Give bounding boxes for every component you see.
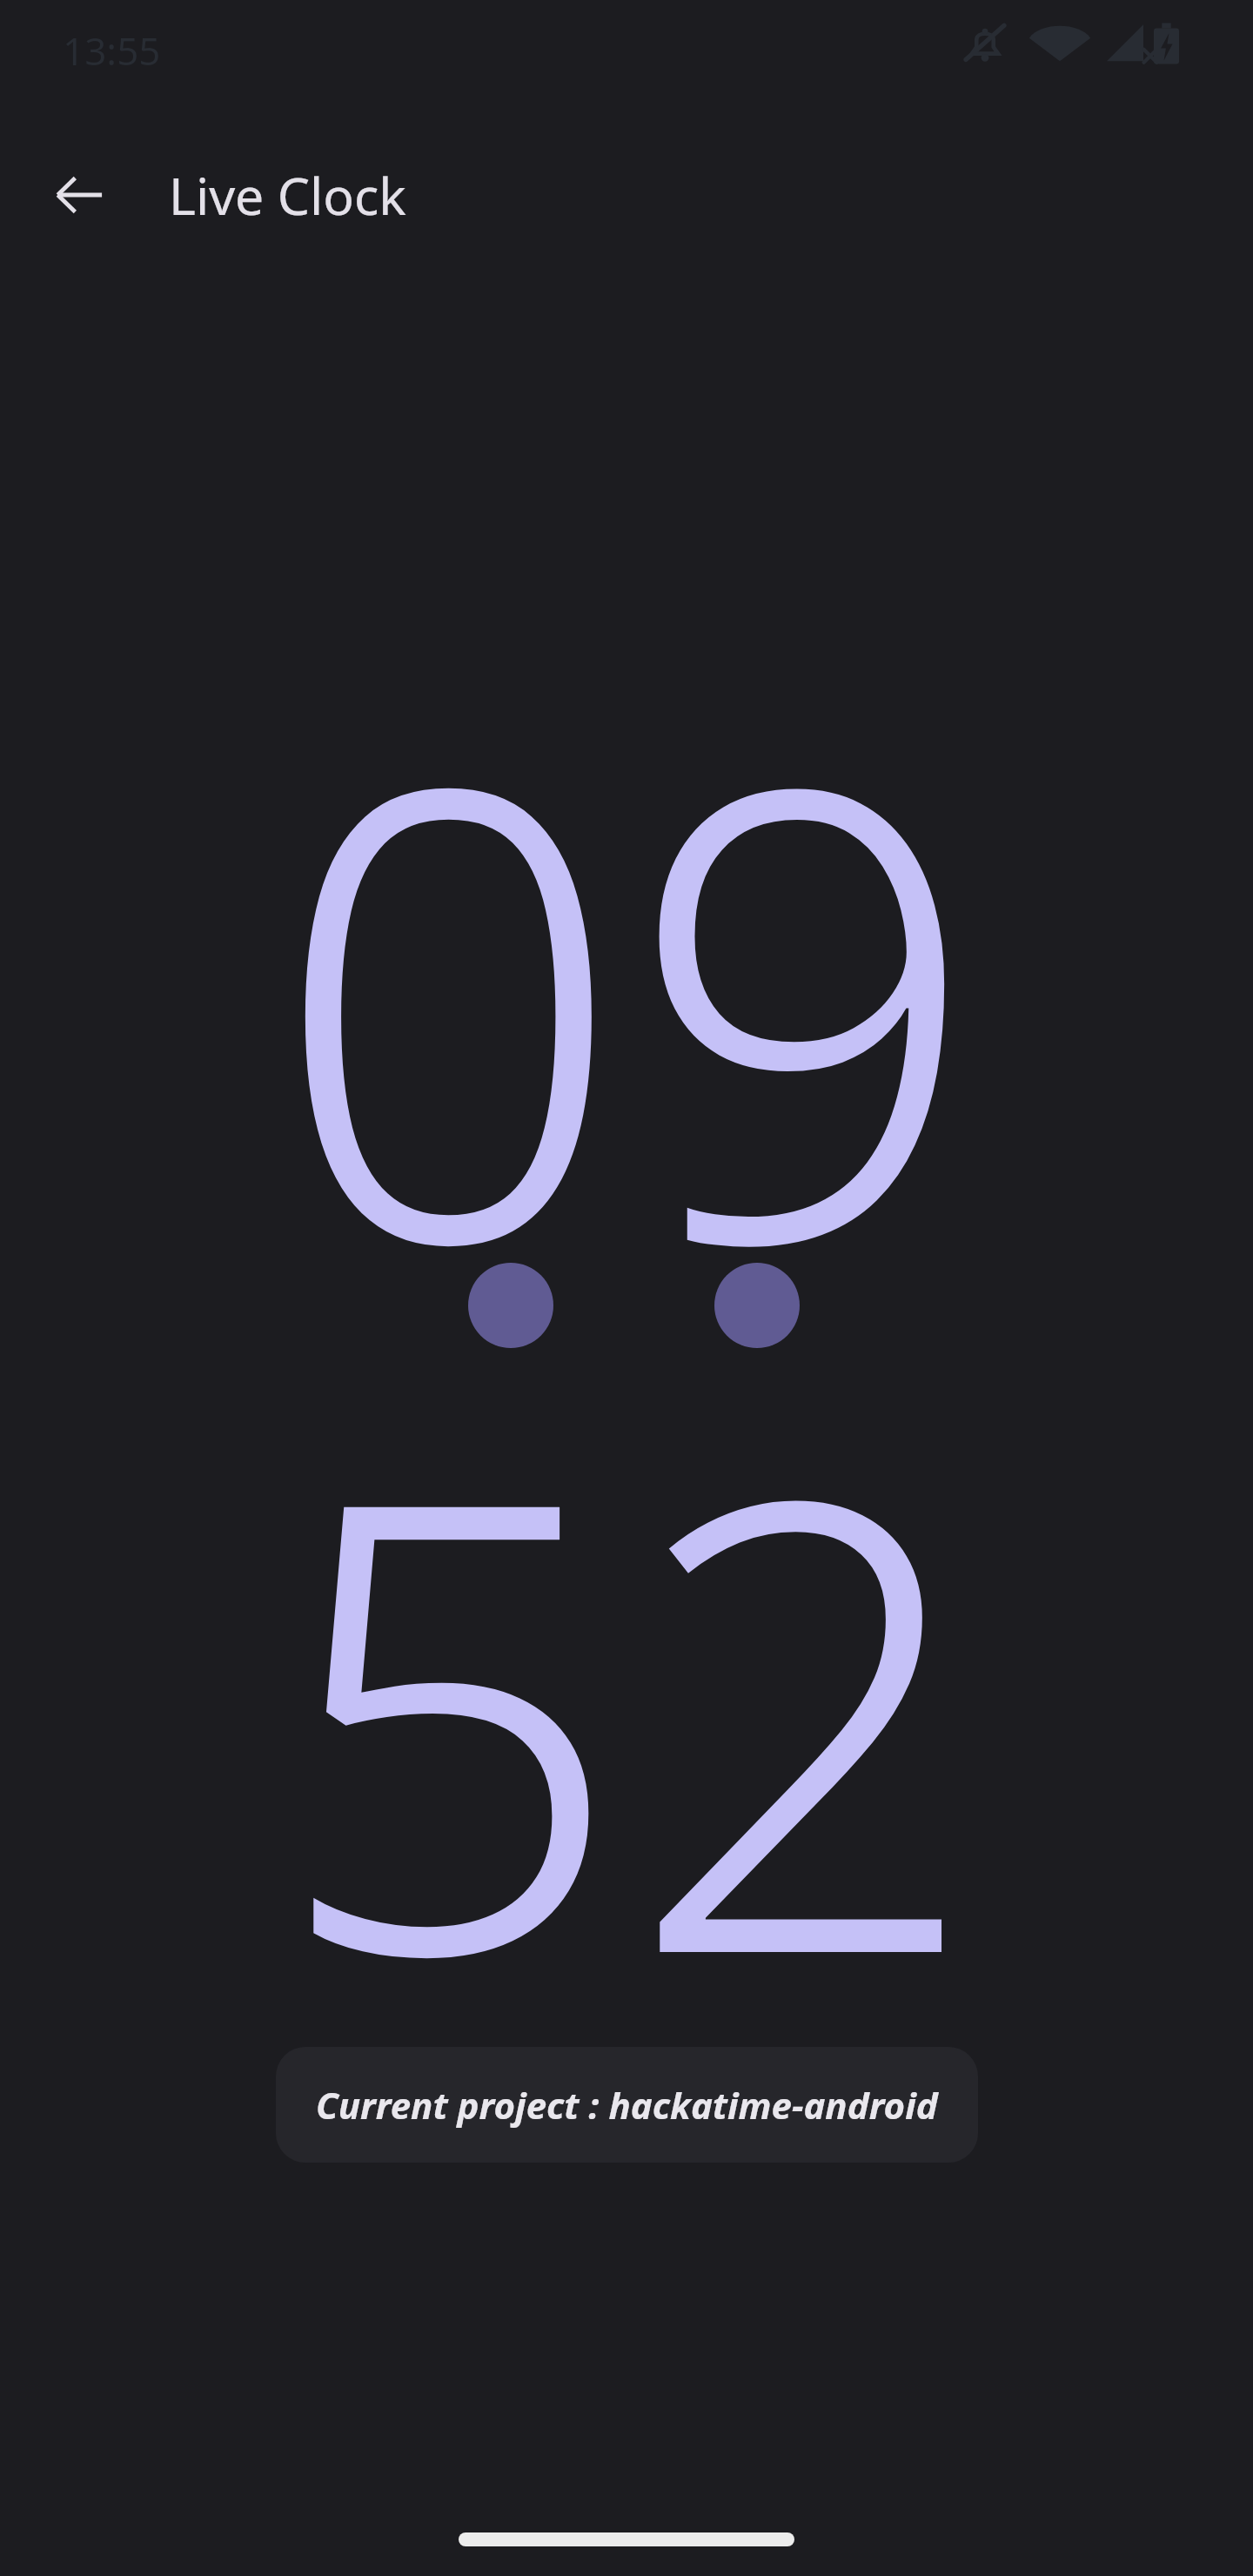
staticText: Live Clock — [169, 160, 406, 230]
staticText: 52 — [271, 1286, 982, 2135]
button[interactable]: Current project : hackatime-android — [276, 2047, 978, 2163]
button[interactable]: Back — [37, 152, 122, 238]
staticText: 09 — [271, 574, 982, 1423]
staticText: 13:55 — [63, 24, 161, 77]
staticText: Current project : hackatime-android — [316, 2080, 938, 2130]
